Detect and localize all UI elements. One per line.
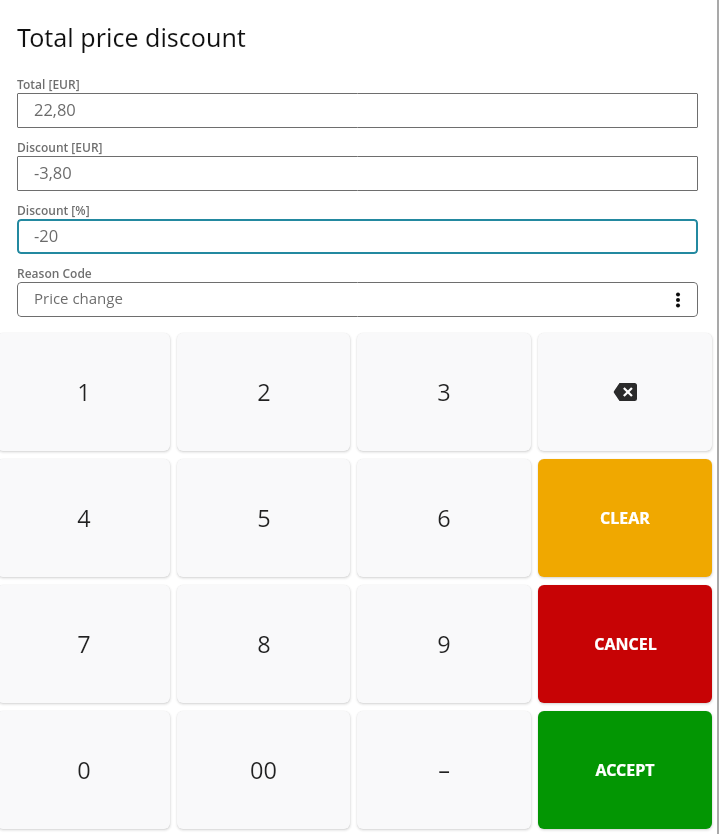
button[interactable]: 0	[0, 711, 170, 829]
button[interactable]: 6	[357, 459, 531, 577]
staticText: -20	[34, 224, 59, 246]
staticText: 9	[437, 628, 451, 660]
staticText: CANCEL	[594, 633, 657, 655]
staticText: Discount [EUR]	[17, 139, 103, 155]
button[interactable]: CLEAR	[538, 459, 712, 577]
staticText: Reason Code	[17, 265, 92, 281]
button[interactable]: ACCEPT	[538, 711, 712, 829]
staticText: Total price discount	[17, 20, 246, 54]
button[interactable]: Price change	[17, 282, 698, 317]
button[interactable]: 22,80	[17, 93, 698, 128]
staticText: 0	[77, 754, 91, 786]
button[interactable]: 7	[0, 585, 170, 703]
button[interactable]: 4	[0, 459, 170, 577]
staticText: CLEAR	[600, 507, 650, 529]
staticText: Total [EUR]	[17, 76, 80, 92]
staticText: 1	[77, 376, 91, 408]
staticText: 7	[77, 628, 91, 660]
staticText: 22,80	[34, 98, 76, 120]
button[interactable]: –	[357, 711, 531, 829]
staticText: Price change	[34, 288, 123, 308]
staticText: 4	[77, 502, 91, 534]
staticText: Discount [%]	[17, 202, 90, 218]
staticText: -3,80	[34, 161, 72, 183]
button[interactable]: 9	[357, 585, 531, 703]
button[interactable]: 5	[177, 459, 350, 577]
staticText: 2	[257, 376, 271, 408]
button[interactable]: -3,80	[17, 156, 698, 191]
staticText: 6	[437, 502, 451, 534]
button[interactable]: 8	[177, 585, 350, 703]
button[interactable]: More options	[666, 288, 690, 312]
staticText: –	[438, 754, 450, 786]
staticText: 8	[257, 628, 271, 660]
staticText: 5	[257, 502, 271, 534]
button[interactable]: 3	[357, 333, 531, 451]
button[interactable]: 2	[177, 333, 350, 451]
staticText: 00	[250, 754, 277, 786]
button[interactable]: 00	[177, 711, 350, 829]
button[interactable]: CANCEL	[538, 585, 712, 703]
button[interactable]: 1	[0, 333, 170, 451]
staticText: 3	[437, 376, 451, 408]
button[interactable]: Backspace	[538, 333, 712, 451]
button[interactable]: -20	[17, 219, 698, 254]
staticText: ACCEPT	[595, 759, 655, 781]
